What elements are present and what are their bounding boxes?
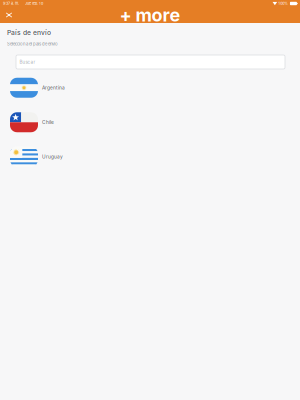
- staticText: Argentina: [42, 85, 65, 91]
- button[interactable]: Uruguay: [0, 139, 300, 174]
- staticText: 100%: [278, 1, 288, 6]
- button[interactable]: Cerrar: [2, 7, 15, 23]
- staticText: + more: [119, 4, 180, 26]
- staticText: País de envío: [7, 28, 51, 37]
- staticText: Uruguay: [42, 154, 63, 160]
- staticText: Selecciona el país de envío: [7, 41, 58, 47]
- staticText: 9:37 a. m.: [3, 1, 19, 6]
- staticText: Chile: [42, 119, 54, 125]
- button[interactable]: Argentina: [0, 70, 300, 105]
- staticText: Jue feb. 10: [25, 1, 43, 6]
- button[interactable]: Chile: [0, 105, 300, 139]
- staticText: Buscar: [19, 59, 35, 65]
